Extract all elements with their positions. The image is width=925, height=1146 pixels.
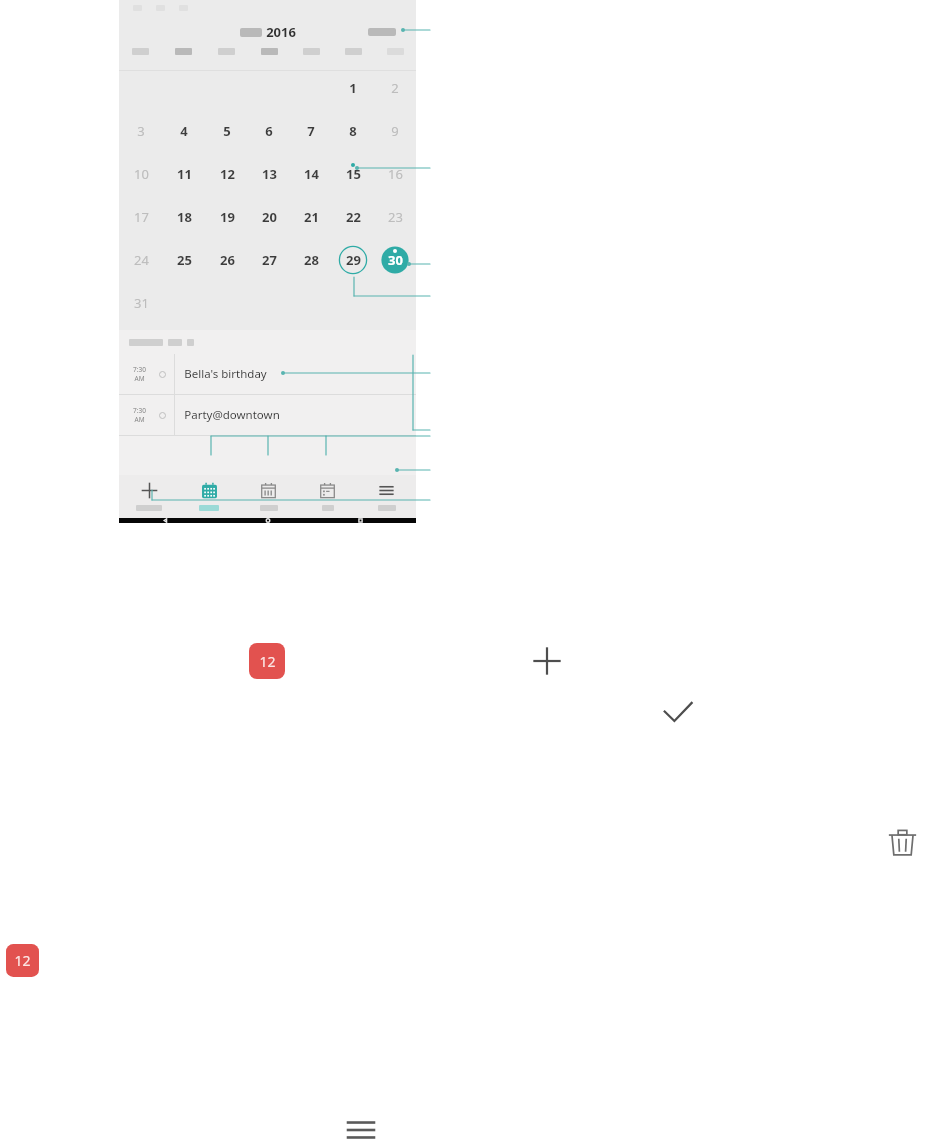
staticText: 2 [391,79,399,97]
button[interactable]: Back [163,518,177,523]
staticText: AM [134,374,145,383]
button[interactable]: 6 [248,114,290,148]
staticText: 23 [388,208,403,226]
staticText: 29 [346,251,361,269]
staticText: 16 [388,165,403,183]
button[interactable]: Today [368,28,396,36]
staticText: 31 [134,294,149,312]
button[interactable]: More [357,475,416,511]
staticText: 7:30 [133,406,146,415]
staticText: 24 [134,251,149,269]
staticText: 26 [220,251,235,269]
button[interactable]: 18 [162,200,205,234]
button[interactable]: 15 [332,157,374,191]
button[interactable]: Confirm [660,695,696,731]
button[interactable]: 31 [119,286,162,320]
staticText: 18 [177,208,192,226]
button[interactable]: 20 [248,200,290,234]
button[interactable]: 17 [119,200,162,234]
button[interactable]: 19 [205,200,248,234]
staticText: 25 [177,251,192,269]
button[interactable]: 1 [332,71,374,105]
button[interactable]: 3 [119,114,162,148]
button[interactable]: 16 [374,157,416,191]
staticText: 12 [220,165,235,183]
button[interactable]: New event [119,475,179,511]
staticText: 7:30 [133,365,146,374]
staticText: 8 [349,122,357,140]
button[interactable]: Home [261,518,275,523]
staticText: 14 [304,165,319,183]
button[interactable]: Week view [239,475,298,511]
staticText: 27 [262,251,277,269]
staticText: Bella's birthday [184,366,267,382]
button[interactable]: 4 [162,114,205,148]
staticText: 2016 [266,23,296,41]
staticText: 10 [134,165,149,183]
staticText: AM [134,415,145,424]
staticText: 11 [177,165,192,183]
button[interactable]: 7 [290,114,332,148]
button[interactable]: Add [529,643,565,679]
button[interactable]: Calendar [249,643,285,679]
button[interactable]: Menu [344,1113,378,1146]
button[interactable]: Recents [358,518,372,523]
staticText: 6 [265,122,273,140]
button[interactable]: 9 [374,114,416,148]
staticText: 30 [388,251,403,269]
staticText: 15 [346,165,361,183]
staticText: 4 [180,122,188,140]
button[interactable]: 7:30 [119,354,416,394]
button[interactable]: 23 [374,200,416,234]
button[interactable]: 12 [205,157,248,191]
staticText: 9 [391,122,399,140]
button[interactable]: 28 [290,243,332,277]
button[interactable]: 5 [205,114,248,148]
staticText: 17 [134,208,149,226]
button[interactable]: 13 [248,157,290,191]
button[interactable]: Day view [298,475,357,511]
staticText: 22 [346,208,361,226]
staticText: 13 [262,165,277,183]
staticText: Party@downtown [184,407,280,423]
button[interactable]: 25 [162,243,205,277]
button[interactable]: 29 [332,243,374,277]
button[interactable]: 10 [119,157,162,191]
button[interactable]: Month view [179,475,239,511]
button[interactable]: 21 [290,200,332,234]
button[interactable]: 27 [248,243,290,277]
staticText: 21 [304,208,319,226]
button[interactable]: 14 [290,157,332,191]
staticText: 28 [304,251,319,269]
button[interactable]: 2 [374,71,416,105]
button[interactable]: 11 [162,157,205,191]
button[interactable]: 24 [119,243,162,277]
button[interactable]: Delete [887,827,918,858]
staticText: 19 [220,208,235,226]
button[interactable]: Calendar [6,944,39,977]
staticText: 3 [137,122,145,140]
button[interactable]: 30 [374,243,416,277]
button[interactable]: 7:30 [119,395,416,435]
button[interactable]: 22 [332,200,374,234]
staticText: 20 [262,208,277,226]
staticText: 1 [349,79,357,97]
staticText: 12 [14,951,31,970]
staticText: 12 [259,652,276,671]
button[interactable]: 26 [205,243,248,277]
staticText: 7 [307,122,315,140]
staticText: 5 [223,122,231,140]
button[interactable]: 8 [332,114,374,148]
